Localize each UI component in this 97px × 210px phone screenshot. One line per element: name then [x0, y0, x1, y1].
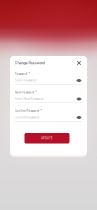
button[interactable]: Close [75, 59, 82, 66]
staticText: Password [14, 72, 28, 76]
staticText: New Password [14, 91, 35, 94]
button[interactable]: UPDATE [26, 133, 71, 143]
staticText: UPDATE [41, 136, 53, 140]
staticText: Change Password [14, 61, 44, 65]
staticText: * [40, 109, 41, 113]
staticText: Enter Password [14, 79, 36, 82]
staticText: Confirm Password [14, 116, 39, 119]
button[interactable]: Show New Password [75, 96, 82, 102]
staticText: Confirm Password [14, 109, 40, 113]
staticText: Enter New Password [14, 97, 43, 101]
staticText: * [28, 72, 29, 76]
button[interactable]: Show Confirm Password [75, 114, 82, 120]
button[interactable]: Show Password [75, 77, 82, 83]
